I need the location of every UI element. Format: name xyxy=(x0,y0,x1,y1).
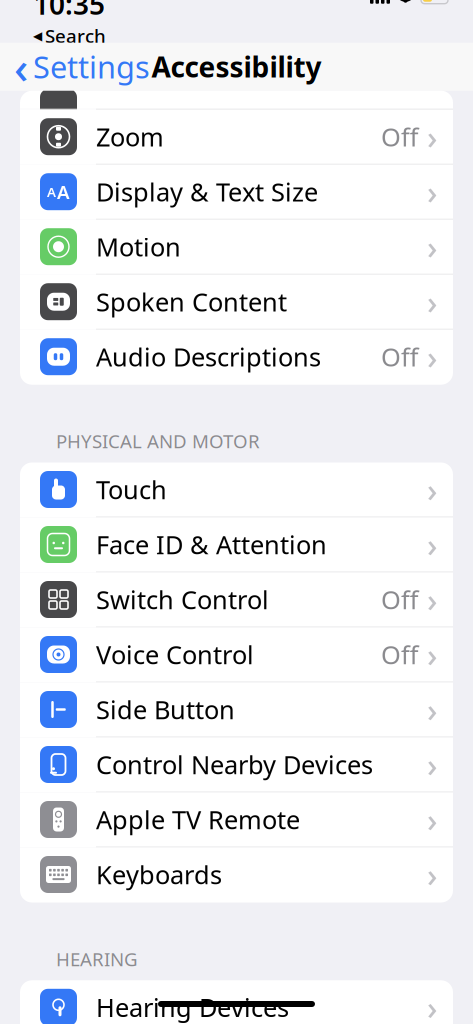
button[interactable]: Side Button xyxy=(20,682,453,737)
button[interactable]: A xyxy=(20,165,453,220)
button[interactable]: Audio Descriptions xyxy=(20,330,453,385)
staticText: Off xyxy=(381,120,418,153)
staticText: Switch Control xyxy=(96,583,269,616)
button[interactable]: Spoken Content xyxy=(20,275,453,330)
staticText: › xyxy=(427,225,437,268)
staticText: Audio Descriptions xyxy=(96,340,321,373)
button[interactable]: Voice Control xyxy=(20,627,453,682)
staticText: A xyxy=(57,179,70,204)
staticText: ◀ xyxy=(33,29,42,43)
button[interactable]: Hearing Devices xyxy=(20,980,453,1024)
staticText: › xyxy=(427,578,437,621)
staticText: › xyxy=(427,468,437,511)
staticText: Keyboards xyxy=(96,858,222,891)
staticText: › xyxy=(427,523,437,566)
staticText: › xyxy=(427,743,437,786)
staticText: Zoom xyxy=(96,120,164,153)
staticText: Apple TV Remote xyxy=(96,803,300,836)
staticText: › xyxy=(427,853,437,896)
button[interactable]: Face ID & Attention xyxy=(20,517,453,572)
staticText: › xyxy=(427,335,437,378)
button[interactable]: Keyboards xyxy=(20,847,453,902)
staticText: › xyxy=(427,170,437,213)
staticText: Voice Control xyxy=(96,638,254,671)
staticText: Touch xyxy=(96,473,167,506)
staticText: Off xyxy=(381,583,418,616)
staticText: Accessibility xyxy=(151,48,321,85)
staticText: Off xyxy=(381,638,418,671)
button[interactable]: Touch xyxy=(20,462,453,517)
staticText: Search xyxy=(45,23,106,48)
staticText: Control Nearby Devices xyxy=(96,748,373,781)
staticText: ‹ xyxy=(14,37,28,96)
button[interactable]: Apple TV Remote xyxy=(20,792,453,847)
staticText: Spoken Content xyxy=(96,285,287,318)
staticText: Display & Text Size xyxy=(96,175,318,208)
staticText: Face ID & Attention xyxy=(96,528,327,561)
staticText: › xyxy=(427,798,437,841)
staticText: Side Button xyxy=(96,693,235,726)
staticText: › xyxy=(427,280,437,323)
staticText: Hearing Devices xyxy=(96,990,289,1024)
staticText: › xyxy=(427,633,437,676)
staticText: Settings xyxy=(33,46,150,87)
staticText: Off xyxy=(381,340,418,373)
staticText: HEARING xyxy=(56,946,138,971)
button[interactable]: Switch Control xyxy=(20,572,453,627)
button[interactable]: Zoom xyxy=(20,110,453,165)
staticText: Motion xyxy=(96,230,181,263)
staticText: › xyxy=(427,688,437,731)
staticText: › xyxy=(427,986,437,1024)
button[interactable]: Motion xyxy=(20,220,453,275)
staticText: 10:35 xyxy=(33,0,105,22)
staticText: PHYSICAL AND MOTOR xyxy=(56,429,260,453)
staticText: A xyxy=(47,183,56,201)
button[interactable]: Control Nearby Devices xyxy=(20,737,453,792)
staticText: › xyxy=(427,115,437,158)
button[interactable]: ‹ xyxy=(0,43,158,91)
